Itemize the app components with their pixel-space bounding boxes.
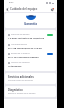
staticText: Conoce todas las opciones (8, 79, 33, 82)
button[interactable]: Diagnóstico (5, 86, 56, 97)
button[interactable]: Notifications (49, 6, 55, 12)
button[interactable]: Almacenamiento (5, 42, 56, 51)
button[interactable]: Back (4, 6, 10, 12)
button[interactable]: Versión de software (5, 60, 56, 69)
staticText: Estado de la batería (11, 52, 30, 55)
staticText: Servicios adicionales (8, 75, 34, 78)
button[interactable]: Estado de la batería (5, 51, 56, 60)
staticText: 1.6 años restantes de cobertura (8, 37, 45, 40)
staticText: Diagnóstico (8, 88, 23, 91)
staticText: Cuidado del equipo (10, 7, 38, 11)
staticText: Garantía del equipo (11, 33, 30, 36)
staticText: 92.7 GB disponibles de 128 GB (8, 47, 42, 50)
staticText: Almacenamiento (11, 43, 27, 46)
staticText: 9:41 (9, 1, 14, 4)
staticText: Garantía (24, 22, 37, 26)
staticText: Versión de software (11, 61, 30, 64)
button[interactable]: Servicios adicionales (5, 73, 56, 84)
staticText: Revisa el estado de tu equipo (8, 92, 36, 95)
button[interactable]: Garantía del equipo (5, 32, 56, 42)
staticText: Actualizado (8, 65, 22, 68)
staticText: 98 % de capacidad máxima (8, 56, 39, 59)
